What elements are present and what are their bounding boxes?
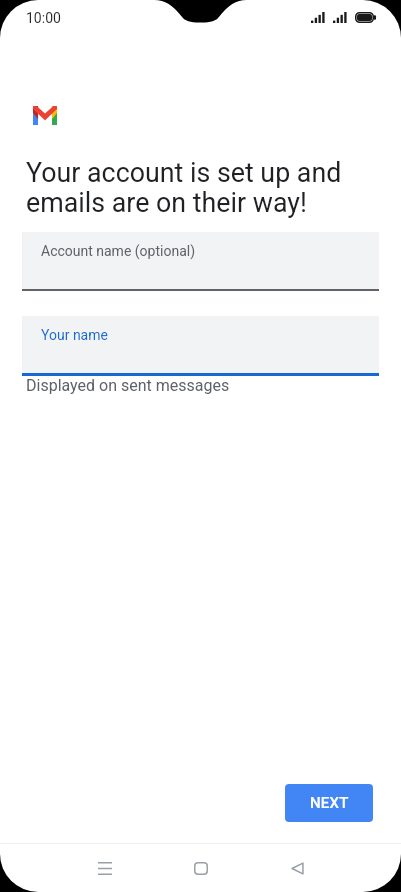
staticText: Displayed on sent messages: [26, 376, 230, 395]
staticText: NEXT: [310, 794, 349, 812]
button[interactable]: NEXT: [285, 784, 373, 822]
staticText: Your account is set up and emails are on…: [26, 158, 359, 218]
button[interactable]: Home: [173, 850, 229, 886]
staticText: Account name (optional): [41, 243, 196, 259]
button[interactable]: Account name (optional): [22, 232, 379, 289]
button[interactable]: Back: [269, 850, 325, 886]
staticText: 10:00: [26, 10, 61, 26]
button[interactable]: Your name: [22, 316, 379, 373]
staticText: Your name: [41, 327, 108, 343]
button[interactable]: Recent apps: [77, 850, 133, 886]
